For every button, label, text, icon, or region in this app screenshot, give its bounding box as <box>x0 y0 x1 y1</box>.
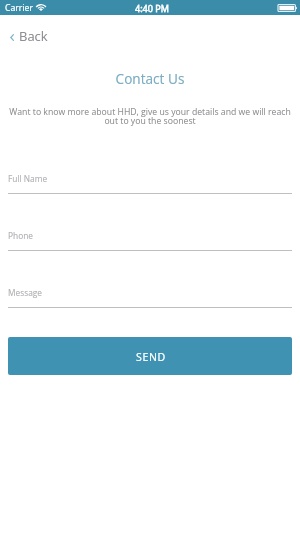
staticText: Message <box>8 287 42 298</box>
staticText: 4:40 PM <box>135 2 169 14</box>
button[interactable]: Message <box>0 287 300 308</box>
button[interactable]: Back <box>0 26 58 46</box>
staticText: Full Name <box>8 173 48 184</box>
button[interactable]: Phone <box>0 230 300 251</box>
other: Wi-Fi signal <box>36 4 46 11</box>
button[interactable]: SEND <box>8 337 292 375</box>
staticText: Back <box>19 27 48 45</box>
button[interactable]: Full Name <box>0 173 300 194</box>
other: Battery full <box>278 4 297 12</box>
staticText: Phone <box>8 230 33 241</box>
staticText: Want to know more about HHD, give us you… <box>0 106 300 127</box>
staticText: SEND <box>136 350 166 364</box>
staticText: Carrier <box>5 2 34 14</box>
staticText: Contact Us <box>0 69 300 88</box>
